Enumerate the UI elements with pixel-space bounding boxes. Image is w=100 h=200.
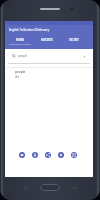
staticText: RECENT	[69, 38, 79, 42]
staticText: लोक	[15, 75, 20, 78]
staticText: FAVORITE	[41, 38, 53, 42]
staticText: English To Konkani Dictionary	[9, 28, 50, 32]
staticText: people	[18, 54, 28, 58]
button[interactable]: people	[5, 51, 93, 61]
button[interactable]: RECENT	[60, 36, 87, 45]
button[interactable]: people	[5, 70, 93, 84]
staticText: HOME	[16, 38, 24, 42]
button[interactable]: Share	[45, 152, 51, 158]
button[interactable]: Rate	[58, 152, 64, 158]
button[interactable]: HOME	[6, 36, 33, 45]
button[interactable]: More	[71, 152, 77, 158]
button[interactable]: Favorite	[19, 152, 25, 158]
staticText: people	[15, 70, 26, 74]
other: Clear	[83, 55, 86, 58]
button[interactable]: FAVORITE	[33, 36, 60, 45]
button[interactable]: Pronounce	[32, 152, 38, 158]
